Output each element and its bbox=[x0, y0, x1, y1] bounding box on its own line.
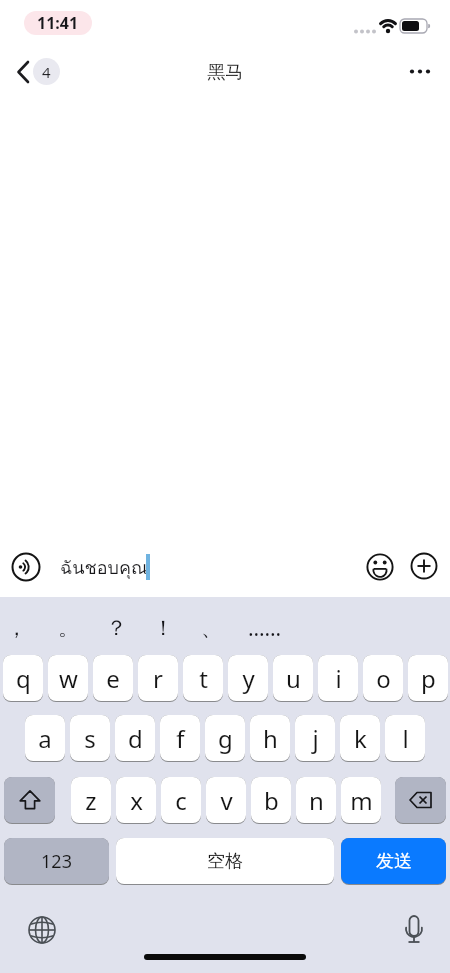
button[interactable] bbox=[410, 552, 438, 580]
button[interactable]: k bbox=[340, 715, 380, 762]
button[interactable]: h bbox=[250, 715, 290, 762]
staticText: 、 bbox=[201, 615, 222, 641]
button[interactable] bbox=[395, 777, 446, 824]
button[interactable] bbox=[4, 777, 55, 824]
button[interactable]: j bbox=[295, 715, 335, 762]
staticText: ฉันชอบคุณ bbox=[60, 553, 148, 582]
button[interactable]: z bbox=[71, 777, 111, 824]
button[interactable]: a bbox=[25, 715, 65, 762]
button[interactable] bbox=[26, 914, 58, 946]
button[interactable]: m bbox=[341, 777, 381, 824]
staticText: w bbox=[59, 662, 78, 695]
staticText: c bbox=[175, 784, 187, 817]
staticText: r bbox=[153, 662, 163, 695]
staticText: 4 bbox=[42, 62, 51, 82]
button[interactable]: o bbox=[363, 655, 403, 702]
button[interactable] bbox=[366, 553, 394, 581]
staticText: n bbox=[309, 784, 324, 817]
button[interactable]: …… bbox=[241, 612, 289, 644]
button[interactable]: s bbox=[70, 715, 110, 762]
staticText: 空格 bbox=[207, 850, 243, 873]
staticText: s bbox=[84, 722, 96, 755]
staticText: x bbox=[130, 784, 143, 817]
button[interactable]: t bbox=[183, 655, 223, 702]
staticText: ， bbox=[6, 615, 27, 641]
staticText: v bbox=[220, 784, 233, 817]
staticText: e bbox=[106, 662, 120, 695]
staticText: z bbox=[85, 784, 97, 817]
staticText: k bbox=[354, 722, 367, 755]
staticText: 123 bbox=[41, 849, 72, 874]
staticText: …… bbox=[248, 614, 282, 643]
button[interactable]: e bbox=[93, 655, 133, 702]
button[interactable]: g bbox=[205, 715, 245, 762]
staticText: j bbox=[312, 722, 319, 755]
button[interactable]: ！ bbox=[139, 612, 187, 644]
button[interactable]: x bbox=[116, 777, 156, 824]
staticText: m bbox=[350, 784, 373, 817]
staticText: y bbox=[242, 662, 255, 695]
button[interactable]: 。 bbox=[44, 612, 92, 644]
button[interactable]: w bbox=[48, 655, 88, 702]
button[interactable]: ， bbox=[0, 612, 40, 644]
staticText: g bbox=[218, 722, 233, 755]
staticText: u bbox=[286, 662, 301, 695]
staticText: b bbox=[264, 784, 279, 817]
staticText: h bbox=[263, 722, 278, 755]
staticText: t bbox=[199, 662, 208, 695]
button[interactable]: 发送 bbox=[341, 838, 446, 885]
button[interactable]: l bbox=[385, 715, 425, 762]
button[interactable]: q bbox=[3, 655, 43, 702]
staticText: f bbox=[176, 722, 185, 755]
button[interactable]: f bbox=[160, 715, 200, 762]
button[interactable]: 空格 bbox=[116, 838, 334, 885]
button[interactable]: 123 bbox=[4, 838, 109, 885]
button[interactable]: p bbox=[408, 655, 448, 702]
button[interactable]: 4 bbox=[8, 56, 64, 88]
staticText: 。 bbox=[58, 615, 79, 641]
button[interactable]: v bbox=[206, 777, 246, 824]
staticText: 发送 bbox=[376, 850, 412, 873]
staticText: d bbox=[128, 722, 143, 755]
button[interactable]: b bbox=[251, 777, 291, 824]
staticText: p bbox=[421, 662, 436, 695]
button[interactable]: i bbox=[318, 655, 358, 702]
button[interactable] bbox=[400, 58, 440, 86]
button[interactable]: u bbox=[273, 655, 313, 702]
staticText: 黑马 bbox=[207, 61, 243, 84]
staticText: 11:41 bbox=[37, 12, 79, 34]
staticText: q bbox=[16, 662, 31, 695]
staticText: ？ bbox=[106, 615, 127, 641]
button[interactable]: d bbox=[115, 715, 155, 762]
button[interactable] bbox=[398, 912, 430, 948]
button[interactable] bbox=[10, 551, 42, 583]
button[interactable]: c bbox=[161, 777, 201, 824]
button[interactable]: n bbox=[296, 777, 336, 824]
staticText: a bbox=[38, 722, 52, 755]
button[interactable]: 、 bbox=[187, 612, 235, 644]
button[interactable]: ？ bbox=[92, 612, 140, 644]
staticText: ！ bbox=[153, 615, 174, 641]
button[interactable]: y bbox=[228, 655, 268, 702]
staticText: o bbox=[376, 662, 391, 695]
staticText: i bbox=[335, 662, 342, 695]
button[interactable]: r bbox=[138, 655, 178, 702]
staticText: l bbox=[402, 722, 409, 755]
